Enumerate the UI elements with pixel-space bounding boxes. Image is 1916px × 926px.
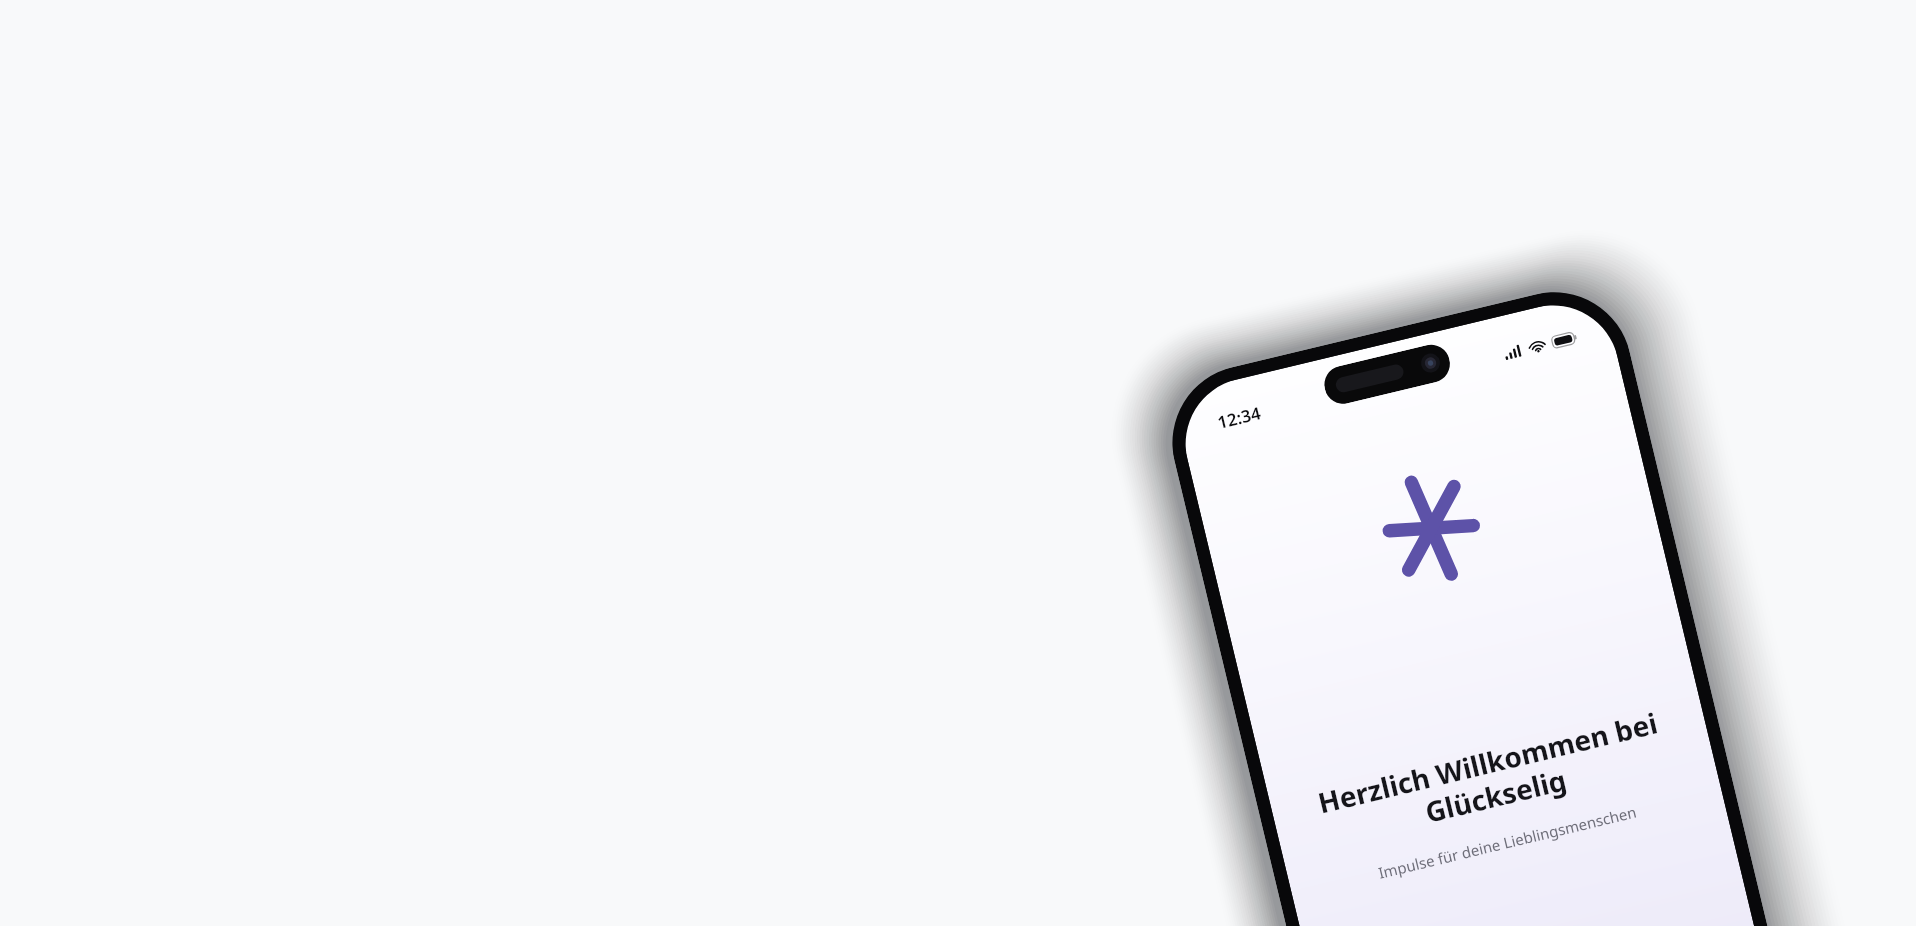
staticText: Impulse für deine Lieblingsmenschen — [1376, 801, 1638, 883]
staticText: Herzlich Willkommen bei Glückselig — [1307, 702, 1676, 857]
button[interactable]: Glückselig Logo — [1371, 468, 1492, 588]
staticText: 12:34 — [1215, 401, 1263, 434]
